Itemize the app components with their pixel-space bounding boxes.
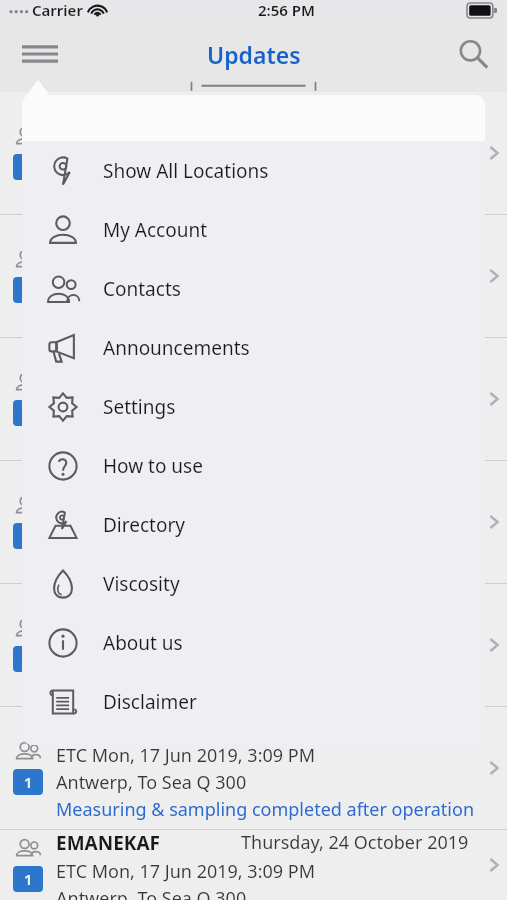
button[interactable]: Settings — [22, 377, 485, 436]
staticText: EMANEKAF — [56, 714, 160, 740]
button[interactable]: 1 — [0, 830, 507, 900]
button[interactable]: Disclaimer — [22, 672, 485, 731]
staticText: Antwerp, To Sea Q 300 — [56, 278, 247, 303]
staticText: ETC Mon, 17 Jun 2019, 3:09 PM — [56, 743, 315, 768]
staticText: Antwerp, To Sea Q 300 — [56, 770, 247, 795]
staticText: EMANEKAF — [56, 468, 160, 494]
staticText: EMANEKAF — [56, 222, 160, 248]
staticText: Thursday, 24 October 2019 — [241, 830, 469, 855]
staticText: Carrier — [32, 0, 83, 20]
staticText: Show All Locations — [103, 158, 269, 184]
button[interactable]: My Account — [22, 200, 485, 259]
button[interactable]: Announcements — [22, 318, 485, 377]
staticText: Measuring & sampling completed after ope… — [56, 551, 475, 576]
staticText: Thursday, 24 October 2019 — [241, 345, 469, 370]
staticText: ETC Mon, 17 Jun 2019, 3:09 PM — [56, 374, 315, 399]
button[interactable]: Viscosity — [22, 554, 485, 613]
button[interactable]: 1 — [0, 707, 507, 829]
staticText: Viscosity — [103, 571, 180, 597]
staticText: Measuring & sampling completed after ope… — [56, 674, 475, 699]
staticText: 1 — [24, 772, 33, 792]
staticText: EMANEKAF — [56, 591, 160, 617]
staticText: Antwerp, To Sea Q 300 — [56, 155, 247, 180]
staticText: EMANEKAF — [56, 345, 160, 371]
staticText: ETC Mon, 17 Jun 2019, 3:09 PM — [56, 859, 315, 884]
button[interactable]: 1 — [0, 92, 507, 214]
staticText: Antwerp, To Sea Q 300 — [56, 647, 247, 672]
button[interactable]: Menu — [14, 28, 66, 80]
button[interactable]: 1 — [0, 461, 507, 583]
button[interactable]: How to use — [22, 436, 485, 495]
staticText: Measuring & sampling completed after ope… — [56, 182, 475, 207]
staticText: Announcements — [103, 335, 250, 361]
staticText: Settings — [103, 394, 176, 420]
staticText: Measuring & sampling completed after ope… — [56, 428, 475, 453]
button[interactable]: Directory — [22, 495, 485, 554]
staticText: ETC Mon, 17 Jun 2019, 3:09 PM — [56, 620, 315, 645]
staticText: Directory — [103, 512, 185, 538]
staticText: My Account — [103, 217, 208, 243]
staticText: Updates — [207, 39, 301, 70]
staticText: ETC Mon, 17 Jun 2019, 3:09 PM — [56, 128, 315, 153]
button[interactable]: About us — [22, 613, 485, 672]
button[interactable]: Show All Locations — [22, 141, 485, 200]
staticText: Measuring & sampling completed after ope… — [56, 797, 475, 822]
staticText: EMANEKAF — [56, 830, 160, 856]
staticText: ETC Mon, 17 Jun 2019, 3:09 PM — [56, 497, 315, 522]
button[interactable]: 1 — [0, 215, 507, 337]
staticText: How to use — [103, 453, 203, 479]
staticText: About us — [103, 630, 183, 656]
staticText: Antwerp, To Sea Q 300 — [56, 524, 247, 549]
staticText: 2:56 PM — [258, 0, 315, 20]
button[interactable]: 1 — [0, 338, 507, 460]
staticText: Contacts — [103, 276, 181, 302]
staticText: 1 — [24, 869, 33, 889]
button[interactable]: 1 — [0, 584, 507, 706]
staticText: Antwerp, To Sea Q 300 — [56, 401, 247, 426]
button[interactable]: Search — [449, 30, 497, 78]
button[interactable]: Contacts — [22, 259, 485, 318]
staticText: Disclaimer — [103, 689, 197, 715]
staticText: Antwerp, To Sea Q 300 — [56, 886, 247, 900]
